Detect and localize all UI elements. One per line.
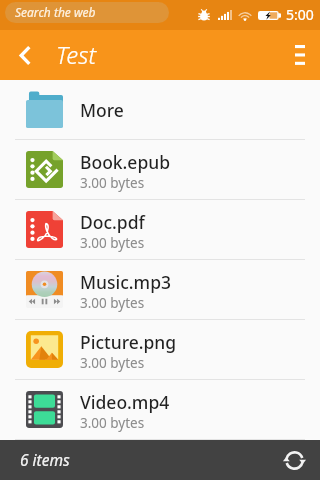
button[interactable]: Refresh — [274, 440, 314, 480]
staticText: Book.epub — [80, 150, 171, 174]
staticText: Search the web — [15, 4, 96, 20]
button[interactable]: Doc.pdf — [0, 200, 320, 259]
button[interactable]: More — [0, 80, 320, 139]
staticText: 3.00 bytes — [80, 294, 145, 312]
staticText: 6 items — [20, 449, 70, 470]
staticText: Test — [56, 38, 97, 71]
staticText: Picture.png — [80, 330, 177, 354]
staticText: 3.00 bytes — [80, 174, 145, 192]
button[interactable]: Music.mp3 — [0, 260, 320, 319]
button[interactable]: Video.mp4 — [0, 380, 320, 439]
staticText: 5:00 — [286, 5, 314, 24]
staticText: Music.mp3 — [80, 270, 172, 294]
staticText: More — [80, 98, 124, 122]
button[interactable]: Book.epub — [0, 140, 320, 199]
button[interactable]: Search the web — [5, 2, 169, 23]
button[interactable]: More options — [280, 30, 320, 80]
staticText: 3.00 bytes — [80, 234, 145, 252]
staticText: 3.00 bytes — [80, 354, 145, 372]
staticText: 3.00 bytes — [80, 414, 145, 432]
button[interactable]: Back — [0, 30, 50, 80]
button[interactable]: Picture.png — [0, 320, 320, 379]
staticText: Video.mp4 — [80, 390, 170, 414]
staticText: Doc.pdf — [80, 210, 145, 234]
